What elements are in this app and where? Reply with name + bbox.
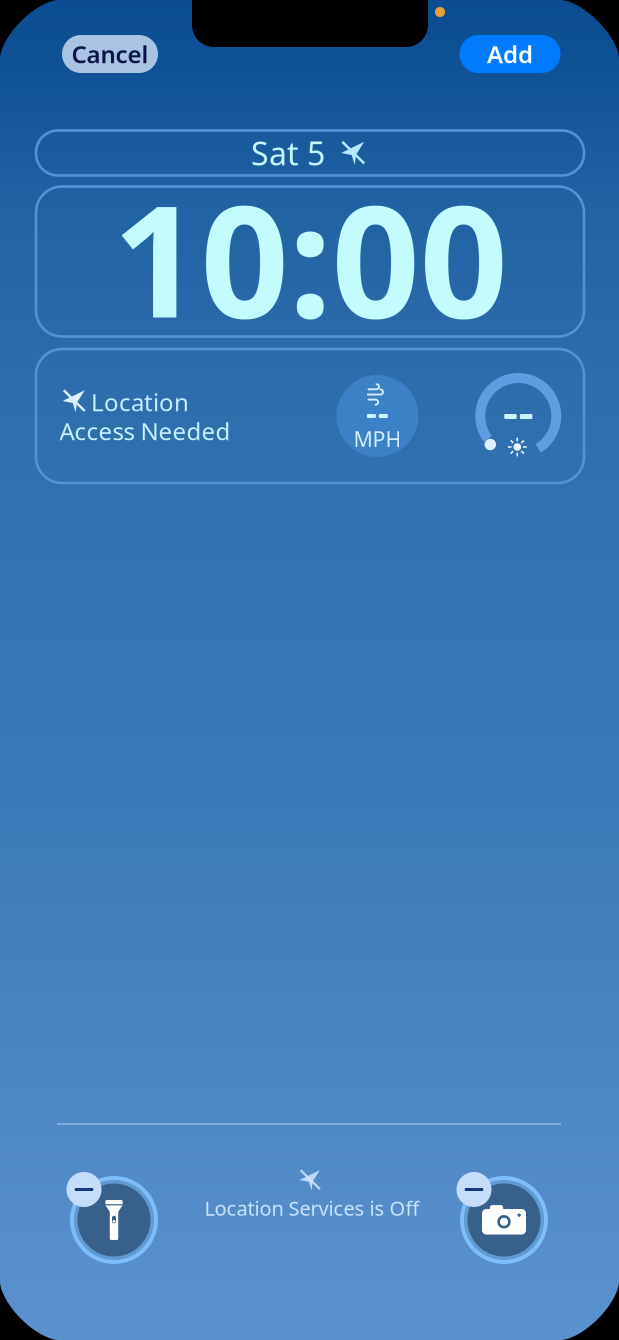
button[interactable]: Add: [459, 35, 560, 73]
button[interactable]: Cancel: [62, 35, 158, 73]
button[interactable]: 10:00: [36, 186, 584, 336]
staticText: MPH: [353, 425, 401, 453]
staticText: Location: [91, 386, 189, 418]
staticText: Add: [487, 38, 533, 70]
staticText: Location Services is Off: [204, 1195, 419, 1221]
staticText: Access Needed: [59, 415, 230, 447]
staticText: 10:00: [112, 155, 507, 360]
staticText: Sat 5: [251, 132, 325, 174]
staticText: Cancel: [71, 38, 148, 70]
button[interactable]: Camera: [452, 1168, 556, 1272]
button[interactable]: Sat 5: [36, 130, 584, 175]
button[interactable]: Location: [36, 349, 584, 483]
button[interactable]: Flashlight: [62, 1168, 166, 1272]
